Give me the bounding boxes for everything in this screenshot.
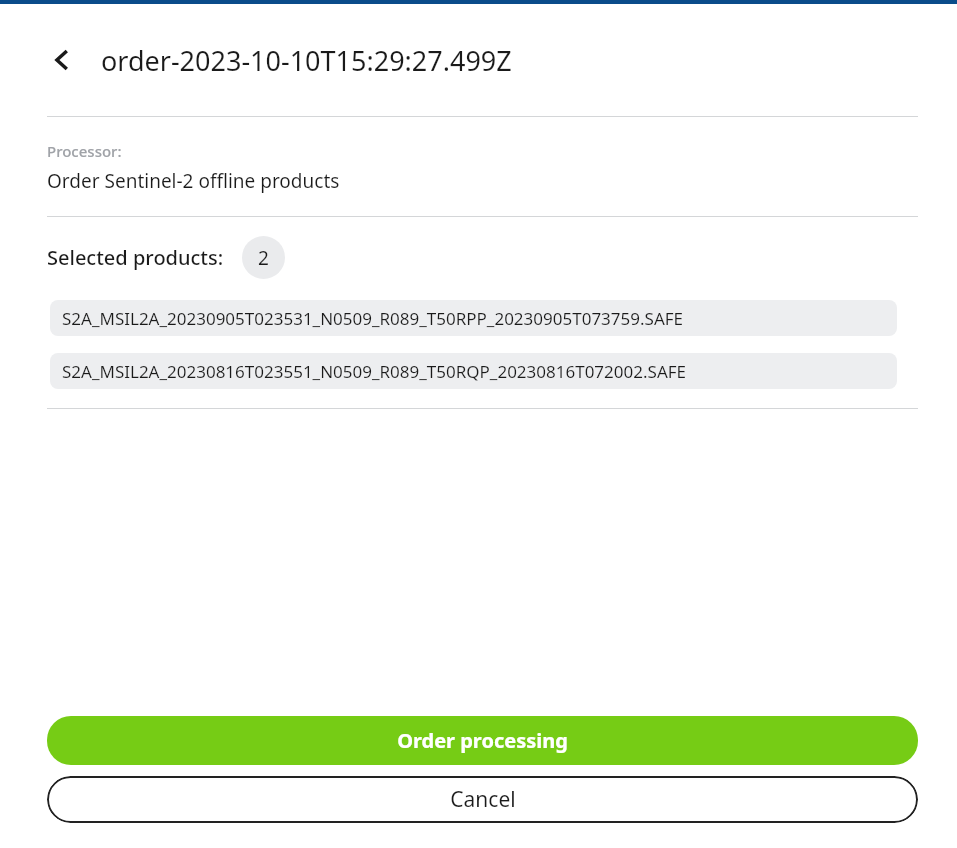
staticText: Cancel <box>450 785 516 814</box>
staticText: Selected products: <box>47 244 224 271</box>
button[interactable]: Order processing <box>47 716 918 765</box>
staticText: 2 <box>258 245 269 271</box>
staticText: S2A_MSIL2A_20230905T023531_N0509_R089_T5… <box>62 307 684 330</box>
staticText: Order Sentinel-2 offline products <box>47 168 340 194</box>
button[interactable]: S2A_MSIL2A_20230905T023531_N0509_R089_T5… <box>50 300 897 336</box>
staticText: order-2023-10-10T15:29:27.499Z <box>101 42 512 79</box>
button[interactable]: Back <box>40 38 84 82</box>
staticText: Processor: <box>47 141 122 161</box>
button[interactable]: Cancel <box>47 776 918 823</box>
staticText: S2A_MSIL2A_20230816T023551_N0509_R089_T5… <box>62 360 687 383</box>
staticText: Order processing <box>397 727 568 754</box>
button[interactable]: S2A_MSIL2A_20230816T023551_N0509_R089_T5… <box>50 353 897 389</box>
